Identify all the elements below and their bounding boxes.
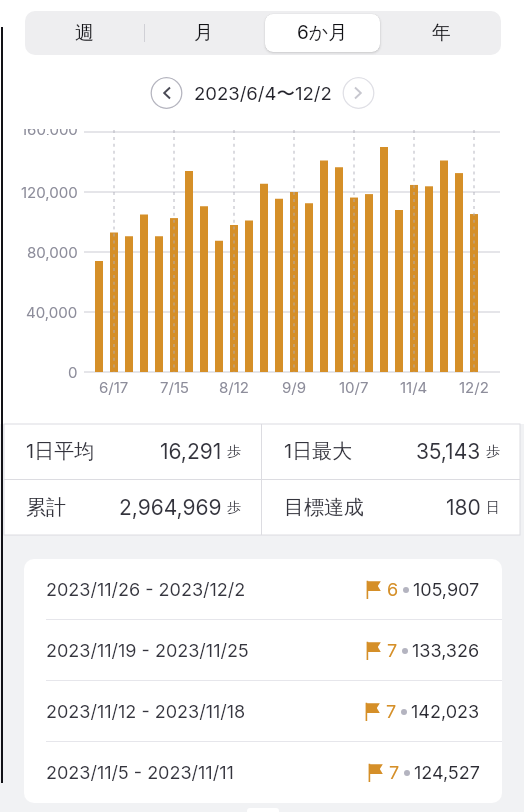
staticText: 1日平均	[26, 439, 95, 464]
button[interactable]: 2023/11/5 - 2023/11/11	[24, 742, 502, 803]
staticText: 40,000	[26, 303, 78, 321]
staticText: 0	[68, 363, 78, 381]
staticText: 8/12	[219, 378, 249, 396]
staticText: 6	[387, 579, 399, 601]
staticText: 7	[387, 640, 398, 662]
staticText: 目標達成	[284, 495, 364, 520]
staticText: 7/15	[160, 378, 189, 396]
staticText: 124,527	[414, 762, 480, 784]
staticText: 7	[389, 762, 400, 784]
staticText: 12/2	[459, 378, 489, 396]
staticText: 16,291	[160, 439, 222, 464]
staticText: 6/17	[99, 378, 129, 396]
button[interactable]: 1日平均	[4, 424, 261, 479]
staticText: 35,143	[416, 439, 481, 464]
staticText: 9/9	[282, 378, 307, 396]
button[interactable]: 2023/11/19 - 2023/11/25	[24, 620, 502, 681]
staticText: 133,326	[412, 640, 480, 662]
staticText: 歩	[227, 443, 241, 461]
staticText: 10/7	[339, 378, 369, 396]
button[interactable]: 月	[144, 11, 263, 55]
staticText: 2023/11/19 - 2023/11/25	[46, 640, 249, 662]
button[interactable]: 週	[25, 11, 144, 55]
staticText: 105,907	[413, 579, 480, 601]
button[interactable]: 1日最大	[262, 424, 520, 479]
staticText: 月	[194, 21, 213, 45]
staticText: 週	[75, 21, 94, 45]
button[interactable]: Next period	[342, 77, 375, 109]
button[interactable]: 2023/11/26 - 2023/12/2	[24, 559, 502, 620]
staticText: 日	[486, 499, 500, 517]
staticText: 7	[386, 701, 397, 723]
staticText: 年	[432, 21, 451, 45]
staticText: 2,964,969	[119, 495, 222, 520]
button[interactable]: Previous period	[150, 77, 183, 109]
staticText: 累計	[26, 495, 66, 520]
staticText: 120,000	[21, 183, 78, 201]
staticText: 2023/6/4〜12/2	[194, 82, 332, 105]
staticText: 11/4	[400, 378, 428, 396]
staticText: 歩	[227, 499, 241, 517]
button[interactable]: 6か月	[263, 11, 382, 55]
staticText: 2023/11/5 - 2023/11/11	[46, 762, 234, 784]
staticText: 142,023	[411, 701, 480, 723]
staticText: 1日最大	[284, 439, 353, 464]
staticText: 2023/11/12 - 2023/11/18	[46, 701, 246, 723]
button[interactable]: 年	[382, 11, 501, 55]
staticText: 180	[446, 495, 481, 520]
button[interactable]: 目標達成	[262, 480, 520, 535]
staticText: 160,000	[21, 129, 78, 135]
staticText: 6か月	[297, 21, 348, 45]
staticText: 80,000	[27, 243, 78, 261]
staticText: 歩	[486, 443, 500, 461]
button[interactable]: 2023/11/12 - 2023/11/18	[24, 681, 502, 742]
button[interactable]: 累計	[4, 480, 261, 535]
staticText: 2023/11/26 - 2023/12/2	[46, 579, 246, 601]
